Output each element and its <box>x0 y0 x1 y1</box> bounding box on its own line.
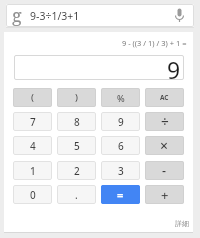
button[interactable]: 9 <box>101 112 140 131</box>
staticText: 9 <box>118 115 124 129</box>
button[interactable]: . <box>57 185 96 204</box>
staticText: + <box>161 186 169 204</box>
staticText: g <box>12 4 22 26</box>
staticText: 0 <box>30 188 36 202</box>
staticText: AC <box>160 93 169 102</box>
button[interactable]: 4 <box>13 136 52 155</box>
staticText: = <box>117 187 124 202</box>
button[interactable]: ÷ <box>145 112 184 131</box>
staticText: ÷ <box>161 113 169 131</box>
button[interactable]: 7 <box>13 112 52 131</box>
staticText: 9 - ((3 / 1) / 3) + 1 = <box>122 38 187 48</box>
button[interactable]: AC <box>145 88 184 107</box>
button[interactable]: ) <box>57 88 96 107</box>
staticText: 詳細 <box>175 219 189 228</box>
button[interactable]: 詳細 <box>120 217 189 229</box>
button[interactable]: - <box>145 161 184 180</box>
staticText: 7 <box>30 115 36 129</box>
staticText: × <box>160 136 169 155</box>
button[interactable]: 5 <box>57 136 96 155</box>
button[interactable]: + <box>145 185 184 204</box>
staticText: - <box>162 162 167 179</box>
button[interactable]: 9 <box>14 55 184 80</box>
button[interactable]: 0 <box>13 185 52 204</box>
staticText: % <box>117 92 125 104</box>
button[interactable]: ( <box>13 88 52 107</box>
staticText: 2 <box>74 164 80 178</box>
button[interactable]: 3 <box>101 161 140 180</box>
staticText: 5 <box>74 139 80 153</box>
button[interactable]: 1 <box>13 161 52 180</box>
staticText: ) <box>75 91 78 104</box>
button[interactable]: % <box>101 88 140 107</box>
staticText: 6 <box>118 139 124 153</box>
staticText: 9-3÷1/3+1 <box>30 9 80 23</box>
staticText: 4 <box>30 139 36 153</box>
staticText: 1 <box>30 164 36 178</box>
button[interactable]: 6 <box>101 136 140 155</box>
staticText: . <box>75 188 78 202</box>
button[interactable]: 2 <box>57 161 96 180</box>
button[interactable]: 8 <box>57 112 96 131</box>
staticText: 8 <box>74 115 80 129</box>
button[interactable]: × <box>145 136 184 155</box>
staticText: 9 <box>167 54 181 79</box>
button[interactable]: g <box>6 4 194 27</box>
staticText: 3 <box>118 164 124 178</box>
button[interactable]: = <box>101 185 140 204</box>
staticText: ( <box>31 91 34 104</box>
